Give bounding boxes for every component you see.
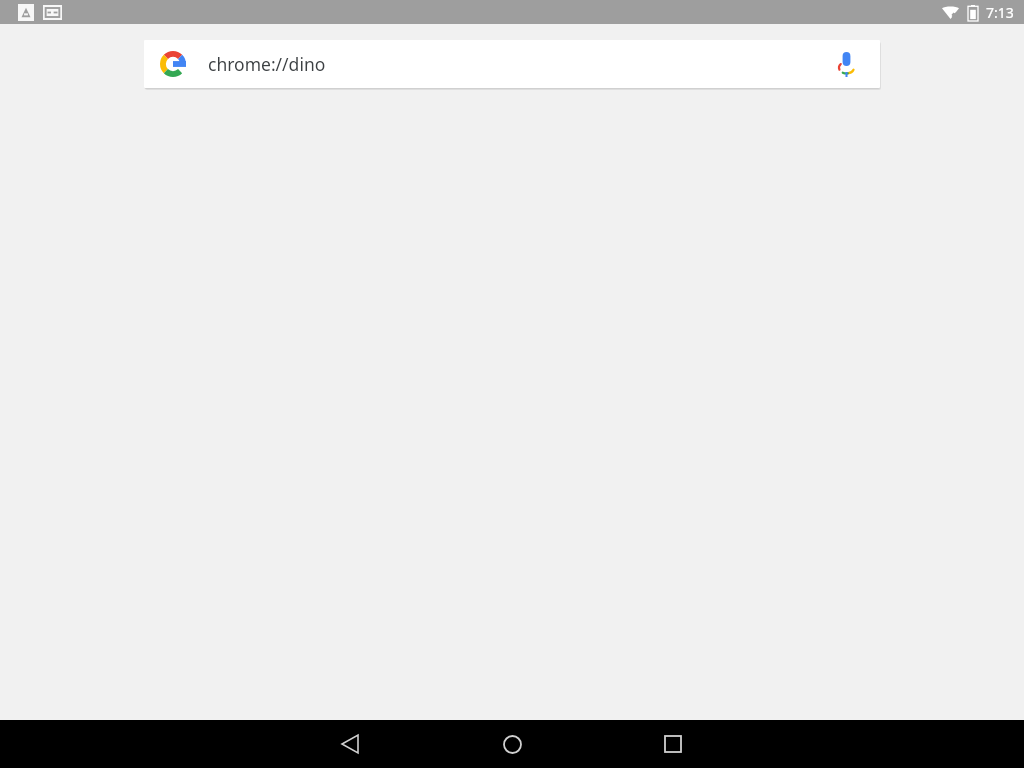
staticText: 7:13 bbox=[986, 3, 1014, 22]
button[interactable]: Home bbox=[480, 720, 544, 768]
staticText: chrome://dino bbox=[208, 52, 326, 76]
button[interactable]: chrome://dino bbox=[144, 40, 880, 88]
button[interactable]: Voice search bbox=[830, 48, 862, 80]
button[interactable]: Recent apps bbox=[641, 720, 705, 768]
button[interactable]: Back bbox=[318, 720, 382, 768]
